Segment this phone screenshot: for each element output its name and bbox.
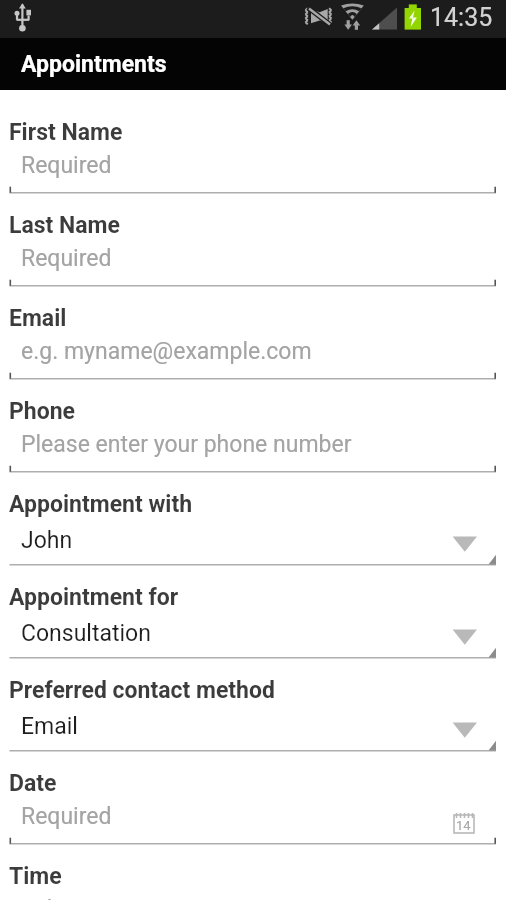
staticText: Phone bbox=[9, 398, 76, 425]
staticText: Consultation bbox=[21, 620, 151, 647]
staticText: Date bbox=[9, 770, 57, 797]
staticText: Select a time bbox=[21, 896, 154, 900]
staticText: First Name bbox=[9, 119, 123, 146]
staticText: Last Name bbox=[9, 212, 120, 239]
button[interactable]: Phone bbox=[0, 390, 506, 480]
button[interactable]: Date bbox=[0, 762, 506, 852]
staticText: Required bbox=[21, 245, 112, 272]
button[interactable]: Last Name bbox=[0, 204, 506, 294]
staticText: 14:35 bbox=[430, 3, 493, 32]
button[interactable]: First Name bbox=[0, 111, 506, 201]
staticText: Appointments bbox=[21, 51, 167, 78]
staticText: Appointment for bbox=[9, 584, 179, 611]
staticText: e.g. myname@example.com bbox=[21, 338, 312, 365]
button[interactable]: Email bbox=[0, 297, 506, 387]
button[interactable]: Preferred contact method bbox=[0, 669, 506, 759]
staticText: 14 bbox=[456, 818, 471, 833]
staticText: Please enter your phone number bbox=[21, 431, 352, 458]
staticText: Required bbox=[21, 152, 112, 179]
button[interactable]: Time bbox=[0, 855, 506, 900]
button[interactable]: Appointment with bbox=[0, 483, 506, 573]
staticText: Appointment with bbox=[9, 491, 193, 518]
button[interactable]: Pick date bbox=[451, 810, 478, 835]
button[interactable]: Appointment for bbox=[0, 576, 506, 666]
staticText: Email bbox=[21, 713, 78, 740]
staticText: Time bbox=[9, 863, 62, 890]
staticText: Preferred contact method bbox=[9, 677, 275, 704]
staticText: John bbox=[21, 527, 73, 554]
staticText: Required bbox=[21, 803, 112, 830]
button[interactable]: Appointments bbox=[0, 38, 506, 90]
staticText: Email bbox=[9, 305, 67, 332]
